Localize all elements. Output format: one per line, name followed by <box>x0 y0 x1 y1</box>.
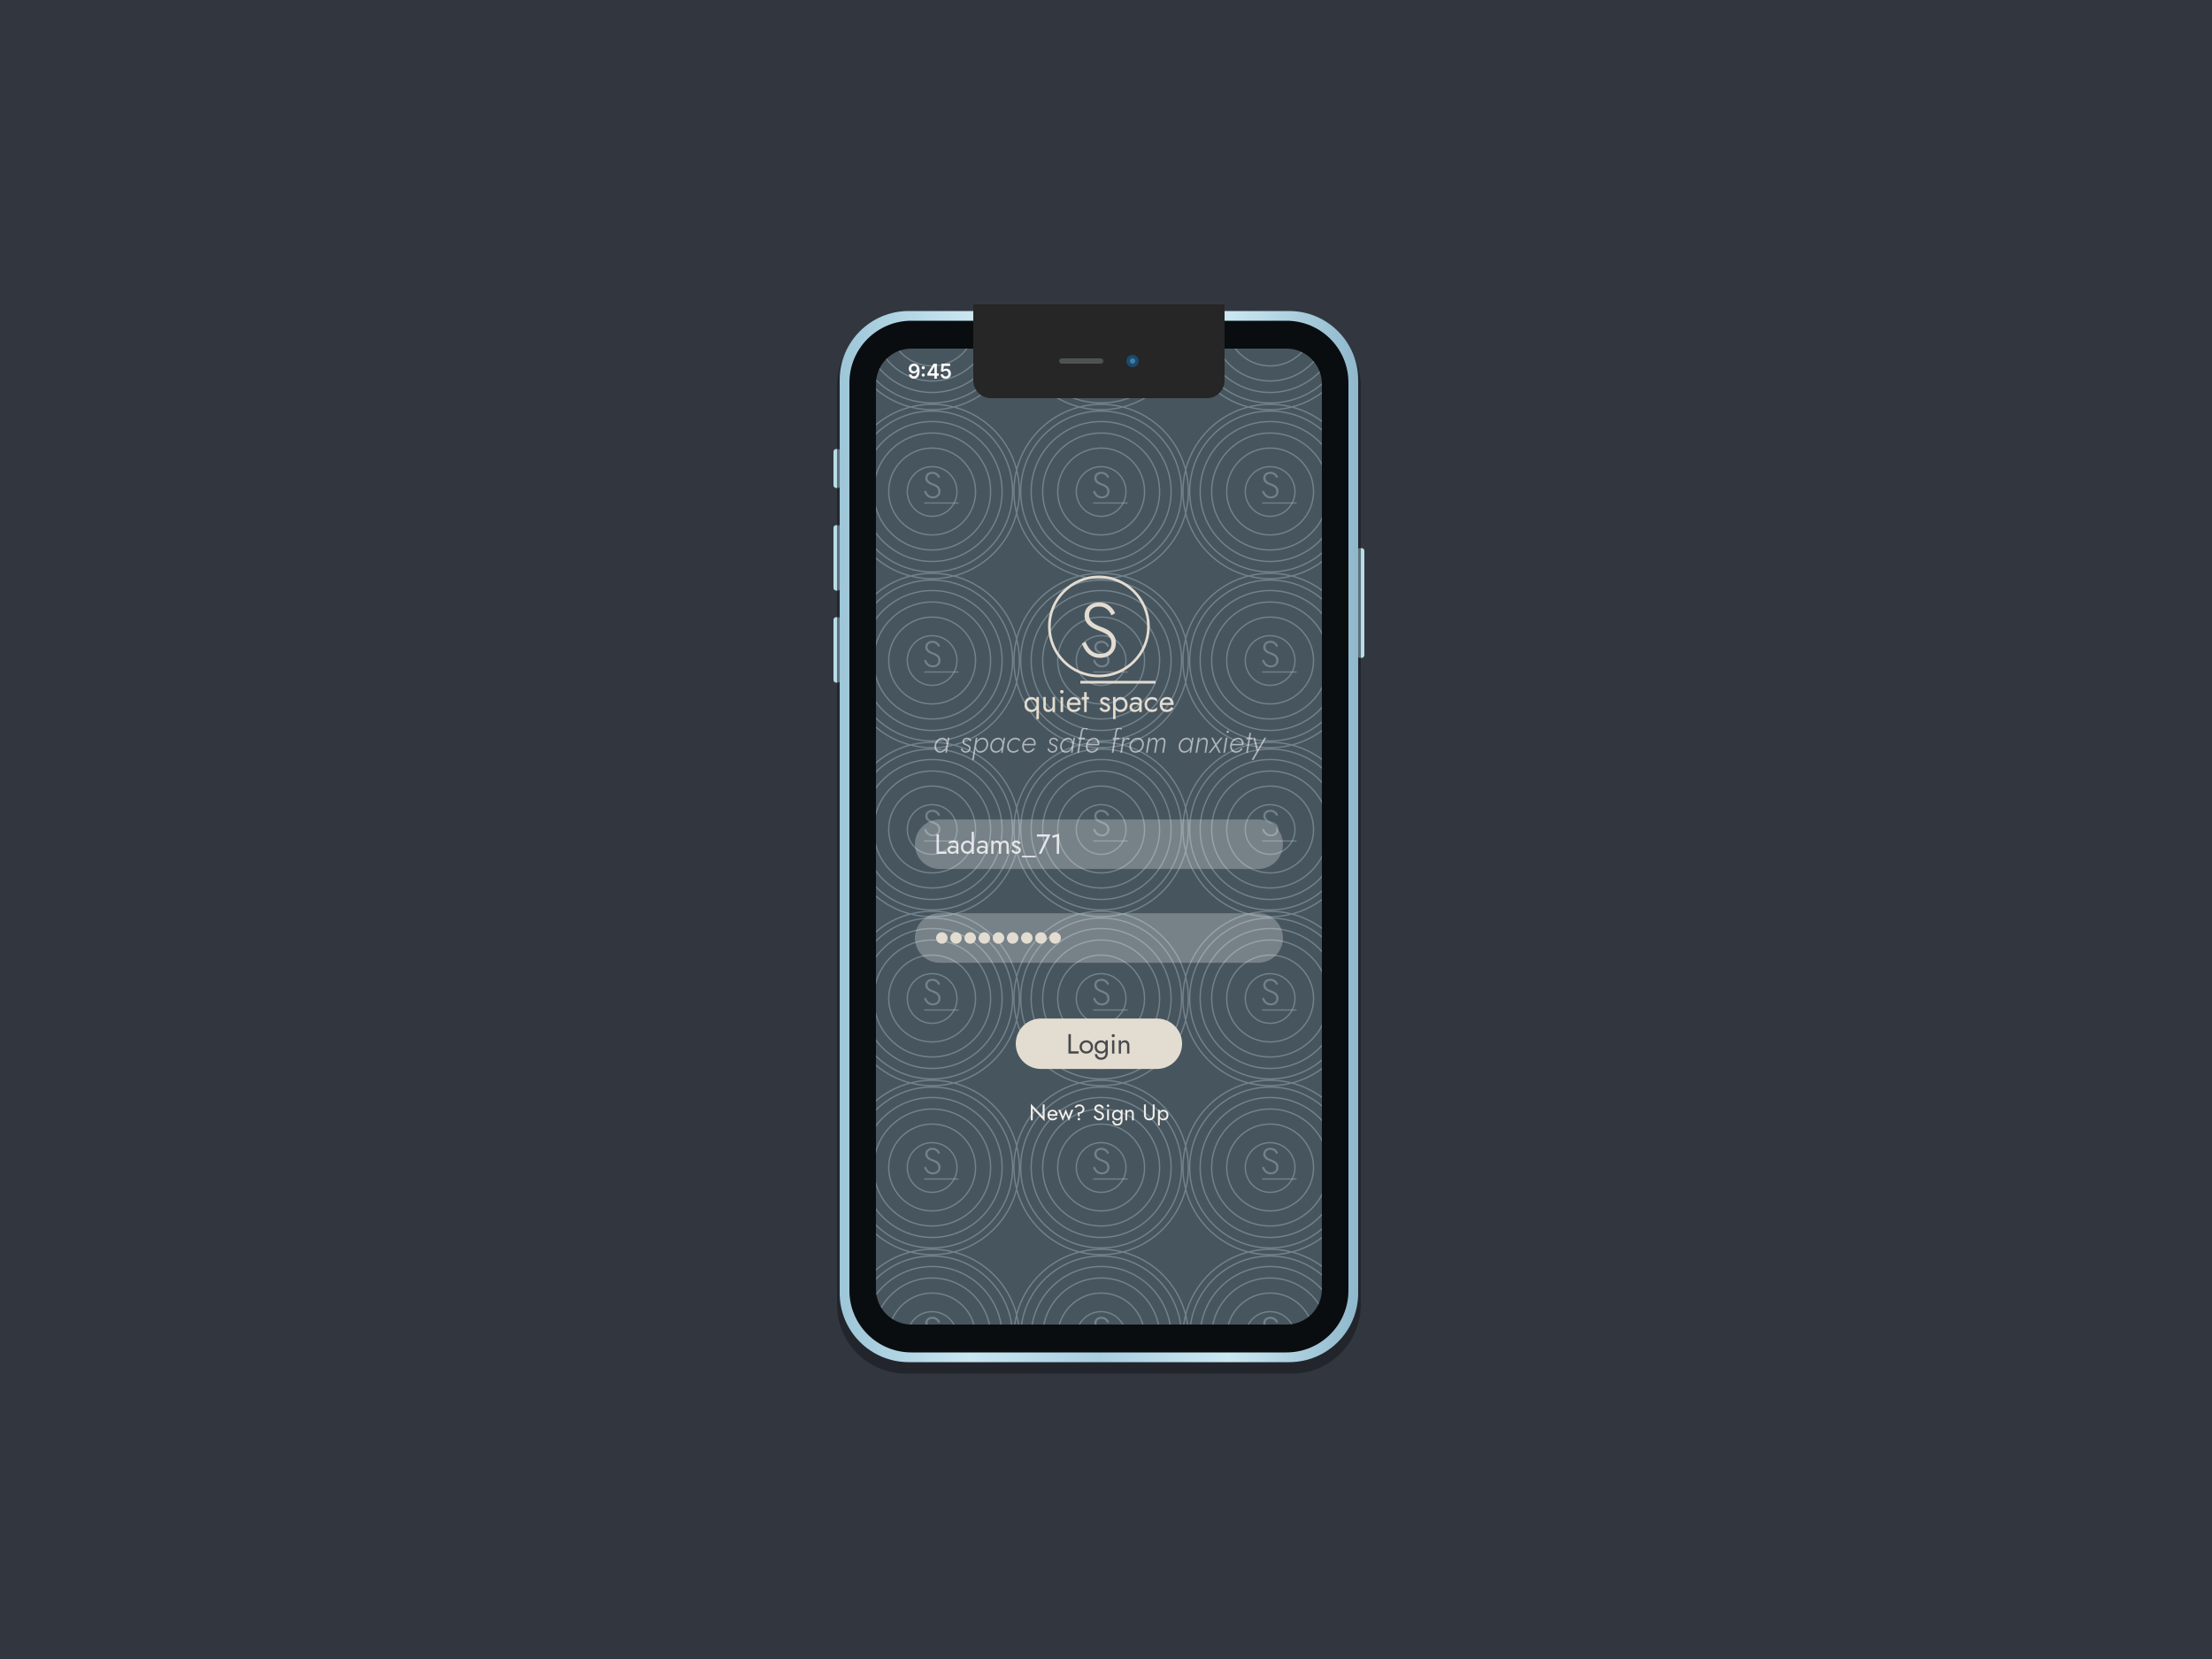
button[interactable]: Login <box>1016 1018 1182 1069</box>
staticText: S <box>1091 627 1111 682</box>
staticText: S <box>1260 289 1280 344</box>
staticText: S <box>922 1303 942 1358</box>
staticText: S <box>922 1134 942 1189</box>
staticText: S <box>1079 574 1119 686</box>
staticText: S <box>922 458 942 513</box>
staticText: Ladams_71 <box>934 824 1063 864</box>
staticText: S <box>922 965 942 1020</box>
staticText: S <box>1091 796 1111 851</box>
staticText: S <box>1260 627 1280 682</box>
button[interactable]: New? Sign Up <box>1029 1096 1169 1129</box>
staticText: S <box>1260 1134 1280 1189</box>
staticText: New? Sign Up <box>1029 1096 1169 1129</box>
staticText: S <box>1091 458 1111 513</box>
staticText: S <box>1091 1134 1111 1189</box>
staticText: S <box>1091 289 1111 344</box>
staticText: S <box>922 627 942 682</box>
staticText: S <box>1260 1303 1280 1358</box>
staticText: S <box>1091 1303 1111 1358</box>
staticText: a space safe from anxiety <box>933 719 1265 765</box>
staticText: quiet space <box>1023 679 1175 724</box>
staticText: S <box>922 796 942 851</box>
staticText: S <box>1260 965 1280 1020</box>
staticText: S <box>1260 458 1280 513</box>
staticText: S <box>1091 965 1111 1020</box>
staticText: S <box>1260 796 1280 851</box>
staticText: 9:45 <box>908 359 952 383</box>
staticText: S <box>922 289 942 344</box>
staticText: Login <box>1066 1023 1132 1064</box>
